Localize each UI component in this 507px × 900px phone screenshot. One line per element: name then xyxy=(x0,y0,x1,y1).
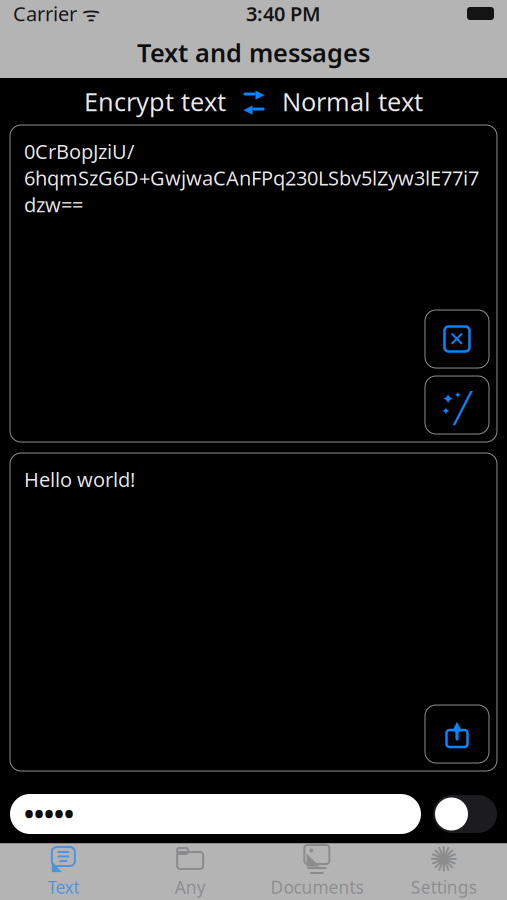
staticText: ▶ xyxy=(255,87,264,101)
staticText: 0CrBopJziU/ 6hqmSzG6D+GwjwaCAnFPq230LSbv… xyxy=(24,138,479,218)
staticText: ✦ xyxy=(441,405,450,417)
button[interactable]: Swap text mode xyxy=(226,81,282,121)
staticText: Encrypt text xyxy=(84,85,226,118)
staticText: Text and messages xyxy=(137,36,370,69)
button[interactable]: ✺ xyxy=(380,840,507,900)
staticText: ▲ xyxy=(452,719,461,732)
staticText: ✦ xyxy=(454,390,462,400)
staticText: ◣ xyxy=(51,858,61,873)
staticText: ◀ xyxy=(243,102,252,116)
staticText: 3:40 PM xyxy=(246,0,321,27)
button[interactable]: Password xyxy=(10,794,421,834)
button[interactable]: Use password xyxy=(433,795,497,833)
staticText: Hello world! xyxy=(24,466,135,493)
staticText: ••••• xyxy=(24,796,74,832)
staticText: ▲ xyxy=(452,719,461,732)
staticText: ╱ xyxy=(454,391,472,425)
staticText: Documents xyxy=(270,875,363,898)
staticText: ✺ xyxy=(429,840,458,879)
staticText: ✕ xyxy=(448,328,465,350)
button[interactable]: Generate password xyxy=(425,376,489,434)
staticText: ◣ xyxy=(306,849,319,868)
staticText: Normal text xyxy=(282,85,423,118)
button[interactable]: Share xyxy=(425,705,489,763)
staticText: ✦ xyxy=(442,391,454,407)
staticText: Settings xyxy=(411,875,477,898)
button[interactable]: Any xyxy=(127,840,254,900)
button[interactable]: Clear text xyxy=(425,310,489,368)
button[interactable]: ◣ xyxy=(0,840,127,900)
staticText: Carrier xyxy=(13,0,77,27)
staticText: Any xyxy=(175,875,206,898)
staticText: Text xyxy=(47,875,79,898)
staticText: ᯤ xyxy=(77,0,100,27)
button[interactable]: ◣ xyxy=(253,840,380,900)
